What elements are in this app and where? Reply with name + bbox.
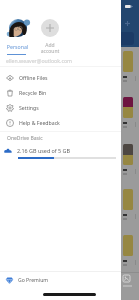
staticText: OneDrive Basic [7, 135, 43, 142]
staticText: Offline Files [19, 74, 48, 81]
button[interactable]: Settings [0, 100, 121, 115]
button[interactable]: Go Premium [0, 272, 121, 289]
staticText: 2.16 GB used of 5 GB [17, 147, 71, 154]
button[interactable]: Offline Files [0, 70, 121, 85]
staticText: Go Premium [18, 277, 49, 284]
staticText: Help & Feedback [19, 119, 60, 126]
staticText: ellen.weaver@outlook.com [6, 57, 72, 64]
staticText: Settings [19, 104, 39, 111]
button[interactable]: Recycle Bin [0, 85, 121, 100]
staticText: Add account [36, 42, 64, 55]
button[interactable]: Add account [41, 19, 59, 37]
staticText: Personal [3, 43, 32, 50]
button[interactable] [8, 19, 27, 37]
button[interactable]: Help & Feedback [0, 115, 121, 130]
staticText: Recycle Bin [19, 89, 47, 96]
